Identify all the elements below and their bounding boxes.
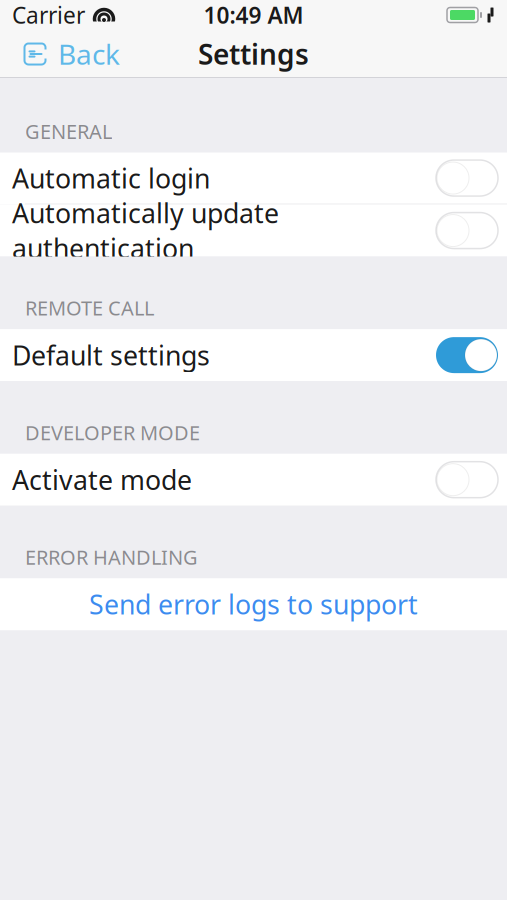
staticText: Activate mode bbox=[12, 462, 192, 497]
staticText: ERROR HANDLING bbox=[25, 544, 198, 570]
button[interactable]: Automatically update authentication bbox=[0, 205, 507, 257]
staticText: Automatic login bbox=[12, 160, 210, 196]
button[interactable]: Back bbox=[0, 30, 134, 78]
button[interactable]: Activate mode bbox=[0, 454, 507, 506]
button[interactable]: Default settings bbox=[0, 329, 507, 381]
button[interactable]: Automatic login bbox=[0, 153, 507, 205]
staticText: Settings bbox=[198, 35, 309, 73]
staticText: Default settings bbox=[12, 337, 210, 373]
staticText: Send error logs to support bbox=[89, 586, 418, 622]
staticText: Automatically update authentication bbox=[12, 195, 279, 266]
staticText: Back bbox=[58, 35, 120, 73]
staticText: 10:49 AM bbox=[203, 0, 303, 30]
staticText: Carrier bbox=[12, 0, 85, 30]
staticText: DEVELOPER MODE bbox=[25, 419, 200, 446]
staticText: REMOTE CALL bbox=[25, 295, 154, 321]
button[interactable]: Send error logs to support bbox=[0, 578, 507, 630]
staticText: GENERAL bbox=[25, 118, 112, 145]
